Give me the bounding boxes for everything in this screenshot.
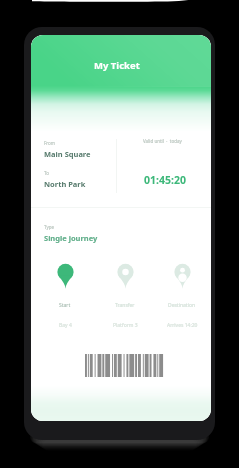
- other: Transfer: [112, 263, 139, 290]
- staticText: To: [44, 170, 49, 176]
- staticText: North Park: [44, 179, 86, 189]
- staticText: Destination: [168, 302, 196, 309]
- staticText: From: [44, 140, 56, 146]
- other: Start: [52, 263, 79, 290]
- staticText: Platform 3: [113, 322, 138, 329]
- staticText: My Ticket: [94, 59, 140, 72]
- staticText: Bay 4: [59, 322, 72, 329]
- staticText: Start: [59, 302, 71, 309]
- button[interactable]: Transfer: [103, 263, 147, 329]
- staticText: Main Square: [44, 149, 91, 159]
- button[interactable]: Start: [43, 263, 87, 329]
- staticText: Transfer: [115, 302, 135, 309]
- staticText: Valid until · today: [143, 138, 182, 144]
- staticText: Arrives 14:20: [167, 322, 198, 329]
- staticText: Single journey: [44, 233, 98, 243]
- staticText: 01:45:20: [144, 173, 186, 187]
- button[interactable]: Destination: [160, 263, 204, 329]
- staticText: Type: [44, 224, 55, 230]
- other: Destination: [169, 263, 196, 290]
